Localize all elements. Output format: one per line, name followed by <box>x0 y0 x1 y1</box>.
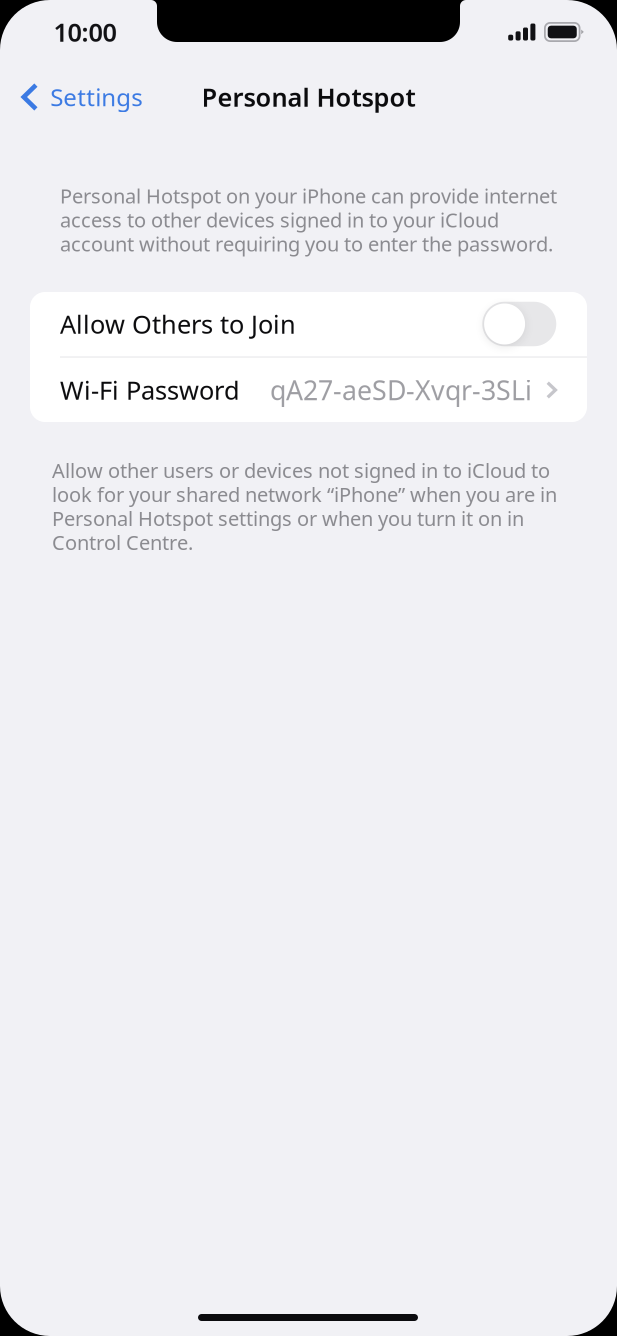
staticText: qA27-aeSD-Xvqr-3SLi <box>270 372 532 408</box>
staticText: access to other devices signed in to you… <box>60 206 499 233</box>
staticText: Personal Hotspot settings or when you tu… <box>52 505 524 532</box>
staticText: Settings <box>50 81 142 113</box>
button[interactable]: Allow Others to Join <box>30 291 587 356</box>
button[interactable]: Wi-Fi Password <box>30 357 587 422</box>
staticText: Personal Hotspot <box>201 80 415 114</box>
staticText: Control Centre. <box>52 529 193 556</box>
staticText: look for your shared network “iPhone” wh… <box>52 481 557 508</box>
staticText: Allow other users or devices not signed … <box>52 457 550 484</box>
staticText: Allow Others to Join <box>60 307 296 341</box>
staticText: Personal Hotspot on your iPhone can prov… <box>60 182 557 209</box>
staticText: 10:00 <box>53 15 116 49</box>
staticText: Wi-Fi Password <box>60 373 240 407</box>
staticText: account without requiring you to enter t… <box>60 230 553 257</box>
button[interactable]: Settings <box>0 75 156 119</box>
